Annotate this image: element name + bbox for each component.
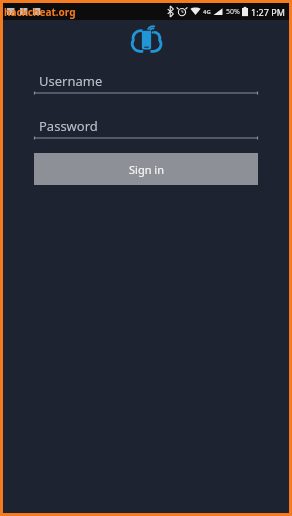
staticText: 50% [226,7,240,17]
staticText: hackcheat.org [4,5,76,19]
staticText: 1:27 PM [251,6,285,18]
button[interactable]: Sign in [34,153,258,185]
button[interactable]: Username [34,69,258,95]
button[interactable]: Password [34,114,258,140]
staticText: Username [39,72,103,90]
staticText: Password [39,117,98,135]
staticText: Sign in [129,162,164,177]
staticText: 4G [203,8,211,16]
